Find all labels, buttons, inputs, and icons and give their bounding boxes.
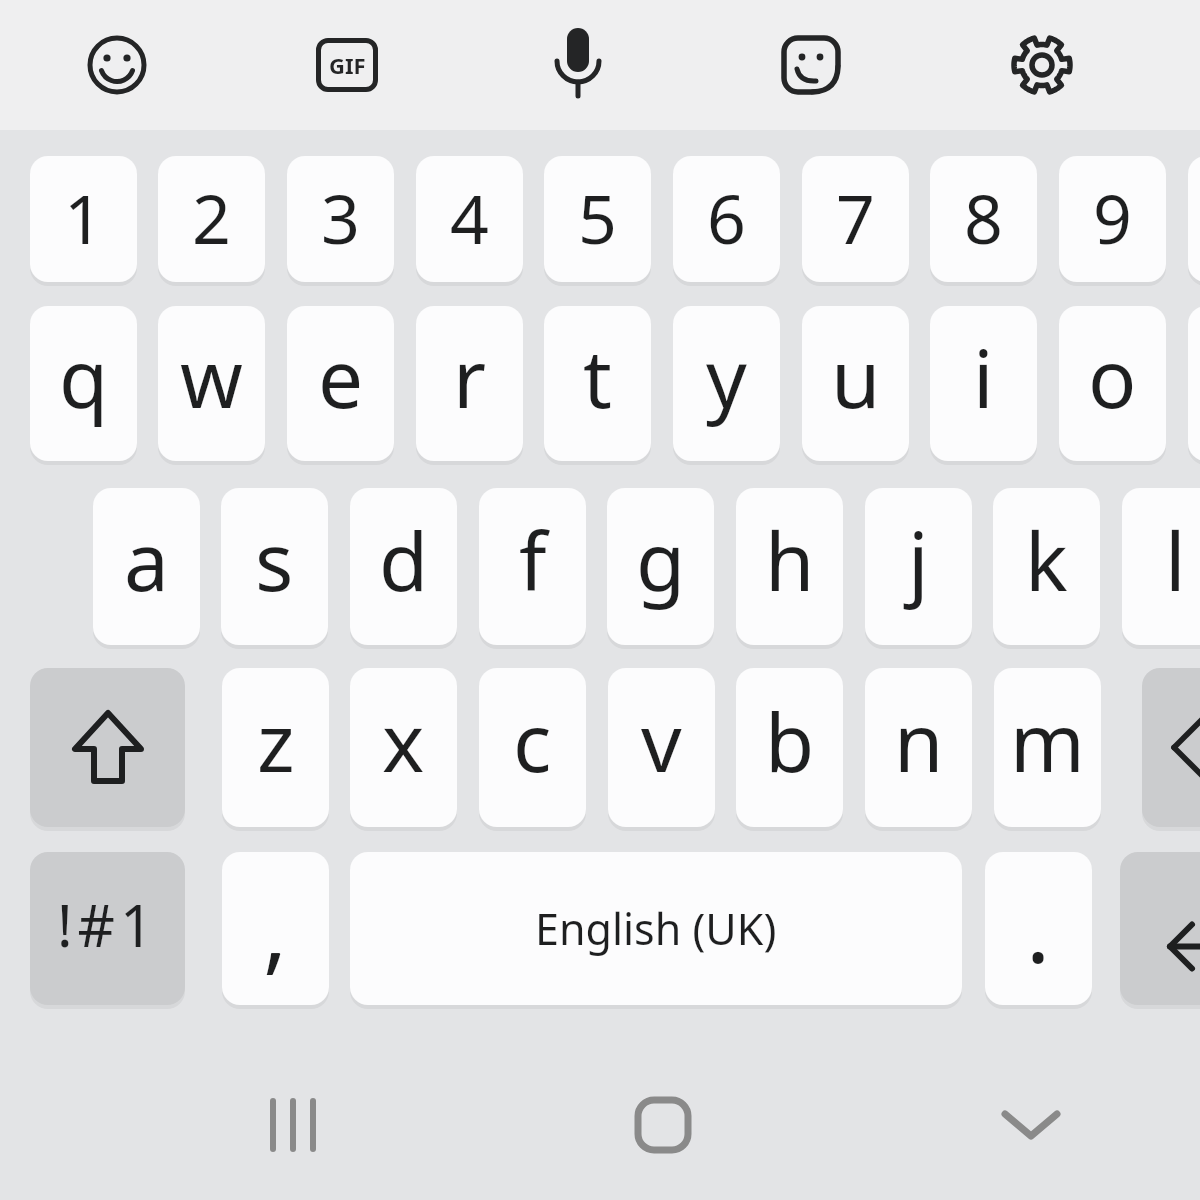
staticText: 2 <box>192 171 231 264</box>
staticText: d <box>379 505 429 614</box>
staticText: c <box>513 686 552 795</box>
button[interactable]: q <box>30 306 137 461</box>
button[interactable]: f <box>479 488 586 645</box>
staticText: m <box>1010 686 1085 795</box>
staticText: 4 <box>450 171 489 264</box>
staticText: 8 <box>964 171 1003 264</box>
staticText: a <box>124 505 169 614</box>
button[interactable]: n <box>865 668 972 827</box>
button[interactable]: 4 <box>416 156 523 282</box>
button[interactable] <box>1120 852 1200 1005</box>
button[interactable]: m <box>994 668 1101 827</box>
staticText: f <box>519 505 547 614</box>
staticText: 6 <box>707 171 746 264</box>
staticText: y <box>706 322 747 431</box>
button[interactable] <box>618 1080 708 1170</box>
staticText: z <box>257 686 295 795</box>
button[interactable]: y <box>673 306 780 461</box>
staticText: q <box>59 322 109 431</box>
staticText: 7 <box>836 171 875 264</box>
button[interactable]: h <box>736 488 843 645</box>
button[interactable]: 3 <box>287 156 394 282</box>
button[interactable] <box>72 20 162 110</box>
button[interactable]: 7 <box>802 156 909 282</box>
button[interactable]: w <box>158 306 265 461</box>
button[interactable]: b <box>736 668 843 827</box>
button[interactable] <box>533 20 623 110</box>
staticText: 9 <box>1093 171 1132 264</box>
button[interactable] <box>986 1080 1076 1170</box>
button[interactable]: a <box>93 488 200 645</box>
button[interactable]: 2 <box>158 156 265 282</box>
button[interactable]: 1 <box>30 156 137 282</box>
button[interactable] <box>30 668 185 827</box>
button[interactable] <box>765 20 855 110</box>
button[interactable]: l <box>1122 488 1200 645</box>
staticText: u <box>831 322 881 431</box>
staticText: , <box>263 867 288 990</box>
button[interactable]: x <box>350 668 457 827</box>
staticText: 5 <box>578 171 617 264</box>
staticText: s <box>255 505 294 614</box>
button[interactable]: 9 <box>1059 156 1166 282</box>
staticText: o <box>1088 322 1137 431</box>
button[interactable]: !#1 <box>30 852 185 1005</box>
staticText: r <box>453 322 487 431</box>
button[interactable]: 5 <box>544 156 651 282</box>
button[interactable]: k <box>993 488 1100 645</box>
staticText: . <box>1026 867 1051 990</box>
button[interactable]: o <box>1059 306 1166 461</box>
staticText: h <box>765 505 815 614</box>
button[interactable]: t <box>544 306 651 461</box>
staticText: n <box>894 686 944 795</box>
staticText: x <box>382 686 425 795</box>
button[interactable]: 0 <box>1188 156 1200 282</box>
button[interactable]: p <box>1188 306 1200 461</box>
button[interactable]: c <box>479 668 586 827</box>
staticText: w <box>180 322 243 431</box>
staticText: !#1 <box>57 885 159 964</box>
staticText: g <box>636 505 686 614</box>
button[interactable]: GIF <box>316 38 378 92</box>
button[interactable]: , <box>222 852 329 1005</box>
staticText: t <box>583 322 612 431</box>
staticText: 1 <box>64 171 103 264</box>
button[interactable]: e <box>287 306 394 461</box>
button[interactable]: j <box>865 488 972 645</box>
button[interactable]: s <box>221 488 328 645</box>
staticText: b <box>765 686 815 795</box>
staticText: k <box>1025 505 1068 614</box>
staticText: l <box>1165 505 1186 614</box>
button[interactable]: 6 <box>673 156 780 282</box>
staticText: i <box>973 322 994 431</box>
button[interactable]: u <box>802 306 909 461</box>
button[interactable]: v <box>608 668 715 827</box>
staticText: v <box>641 686 682 795</box>
button[interactable] <box>248 1080 338 1170</box>
staticText: 3 <box>321 171 360 264</box>
button[interactable] <box>1142 668 1200 827</box>
button[interactable]: z <box>222 668 329 827</box>
staticText: j <box>908 505 929 614</box>
button[interactable]: 8 <box>930 156 1037 282</box>
button[interactable]: g <box>607 488 714 645</box>
staticText: English (UK) <box>535 899 777 958</box>
button[interactable]: i <box>930 306 1037 461</box>
staticText: e <box>318 322 364 431</box>
button[interactable]: d <box>350 488 457 645</box>
button[interactable]: . <box>985 852 1092 1005</box>
staticText: GIF <box>329 50 366 80</box>
button[interactable]: English (UK) <box>350 852 962 1005</box>
button[interactable]: r <box>416 306 523 461</box>
button[interactable] <box>997 20 1087 110</box>
